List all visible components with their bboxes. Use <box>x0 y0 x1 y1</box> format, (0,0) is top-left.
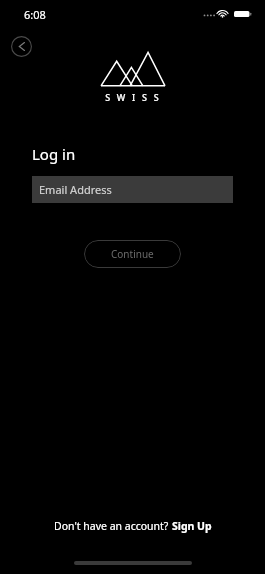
button[interactable]: Email Address <box>32 176 233 203</box>
staticText: S W I S S <box>105 91 161 103</box>
staticText: Continue <box>111 247 154 261</box>
button[interactable]: Don't have an account? <box>48 517 218 535</box>
button[interactable]: Back <box>11 36 32 57</box>
button[interactable]: Continue <box>84 240 181 268</box>
staticText: Don't have an account? <box>54 519 172 533</box>
staticText: Sign Up <box>172 519 212 533</box>
staticText: 6:08 <box>24 7 46 22</box>
staticText: Log in <box>32 144 76 164</box>
staticText: Email Address <box>39 182 112 197</box>
